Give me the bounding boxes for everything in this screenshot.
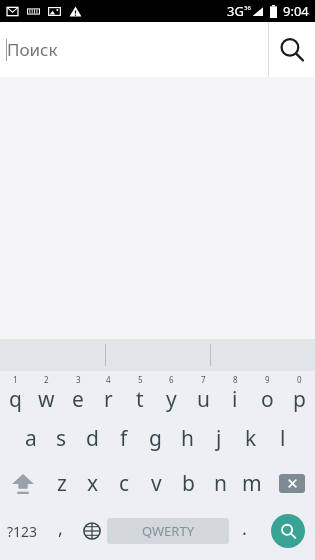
staticText: 9:04 — [283, 2, 309, 20]
staticText: d — [86, 424, 99, 453]
staticText: g — [149, 424, 162, 453]
staticText: . — [242, 516, 247, 541]
staticText: x — [87, 469, 99, 498]
button[interactable]: 7 — [187, 371, 219, 416]
button[interactable]: 5 — [124, 371, 155, 416]
staticText: 8 — [233, 374, 238, 385]
staticText: w — [38, 385, 55, 414]
button[interactable]: b — [172, 461, 204, 506]
staticText: 3G — [227, 2, 244, 20]
staticText: 0 — [297, 374, 302, 385]
staticText: 4 — [106, 374, 111, 385]
button[interactable]: g — [139, 416, 171, 461]
staticText: t — [136, 385, 144, 414]
button[interactable]: h — [171, 416, 203, 461]
button[interactable]: ?123 — [0, 506, 45, 556]
button[interactable]: z — [46, 461, 77, 506]
button[interactable]: l — [267, 416, 299, 461]
staticText: m — [242, 469, 262, 498]
button[interactable]: n — [204, 461, 236, 506]
button[interactable]: 8 — [219, 371, 251, 416]
button[interactable]: 9 — [251, 371, 283, 416]
button[interactable]: QWERTY — [107, 506, 229, 556]
button[interactable]: . — [229, 506, 260, 556]
button[interactable]: 3 — [62, 371, 93, 416]
button[interactable]: 4 — [93, 371, 124, 416]
staticText: i — [232, 385, 238, 414]
button[interactable]: k — [235, 416, 267, 461]
button[interactable]: Backspace — [268, 461, 315, 506]
staticText: z — [57, 469, 67, 498]
button[interactable]: a — [15, 416, 46, 461]
staticText: b — [182, 469, 195, 498]
staticText: QWERTY — [142, 522, 195, 540]
button[interactable]: d — [77, 416, 108, 461]
staticText: s — [56, 424, 67, 453]
button[interactable]: 1 — [0, 371, 31, 416]
button[interactable]: 6 — [155, 371, 187, 416]
staticText: k — [245, 424, 257, 453]
button[interactable]: Change language — [76, 506, 107, 556]
staticText: 36 — [244, 4, 251, 12]
staticText: 9 — [265, 374, 270, 385]
staticText: y — [166, 385, 177, 414]
button[interactable]: 2 — [31, 371, 62, 416]
button[interactable]: s — [46, 416, 77, 461]
button[interactable]: Поиск — [0, 22, 268, 77]
button[interactable]: Search — [260, 506, 315, 556]
button[interactable]: c — [108, 461, 140, 506]
button[interactable]: Search — [269, 22, 315, 77]
button[interactable]: 0 — [283, 371, 315, 416]
staticText: l — [280, 424, 286, 453]
staticText: 1 — [13, 374, 18, 385]
staticText: 6 — [169, 374, 174, 385]
staticText: 5 — [138, 374, 143, 385]
staticText: v — [151, 469, 162, 498]
staticText: ?123 — [7, 522, 38, 541]
button[interactable]: Shift — [0, 461, 46, 506]
staticText: o — [261, 385, 274, 414]
staticText: 7 — [201, 374, 206, 385]
staticText: c — [119, 469, 130, 498]
button[interactable]: x — [77, 461, 108, 506]
staticText: a — [25, 424, 37, 453]
staticText: 3 — [76, 374, 81, 385]
staticText: f — [120, 424, 128, 453]
staticText: q — [9, 385, 22, 414]
button[interactable]: m — [236, 461, 268, 506]
staticText: n — [214, 469, 227, 498]
button[interactable]: f — [108, 416, 139, 461]
staticText: u — [197, 385, 210, 414]
button[interactable]: , — [45, 506, 76, 556]
staticText: e — [72, 385, 84, 414]
button[interactable]: v — [140, 461, 172, 506]
staticText: 2 — [44, 374, 49, 385]
button[interactable]: j — [203, 416, 235, 461]
staticText: h — [181, 424, 194, 453]
staticText: p — [293, 385, 306, 414]
staticText: r — [104, 385, 113, 414]
staticText: , — [58, 516, 63, 541]
staticText: j — [216, 424, 222, 453]
staticText: Поиск — [7, 38, 58, 61]
